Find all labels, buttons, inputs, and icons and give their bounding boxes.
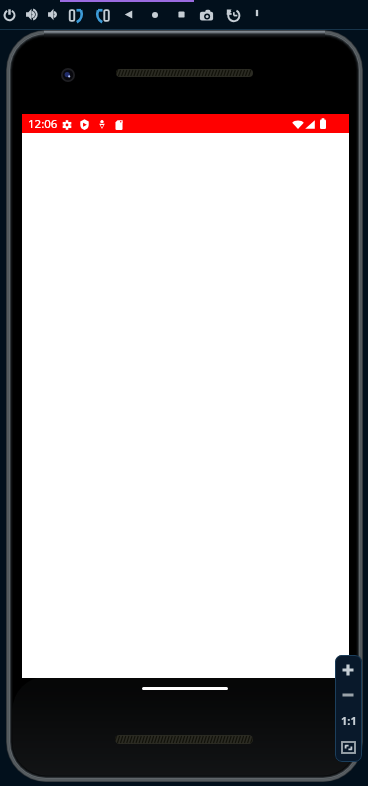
button[interactable]: Back — [124, 10, 133, 19]
button[interactable]: 1:1 — [340, 713, 358, 727]
button[interactable]: More options — [252, 8, 262, 18]
button[interactable]: Home — [152, 12, 158, 18]
button[interactable]: Rotate right — [95, 8, 110, 23]
staticText: 1:1 — [341, 713, 357, 727]
button[interactable]: Zoom out — [342, 689, 354, 701]
button[interactable]: Fit to screen — [341, 741, 356, 754]
button[interactable]: Volume down — [47, 8, 60, 21]
button[interactable]: Restore — [226, 8, 240, 22]
staticText: 12:06 — [28, 116, 58, 132]
button[interactable]: Overview — [178, 11, 185, 18]
button[interactable]: Zoom in — [342, 664, 354, 676]
button[interactable]: Screenshot — [199, 8, 214, 23]
button[interactable]: Rotate left — [69, 8, 84, 23]
button[interactable]: Volume up — [25, 8, 38, 21]
button[interactable]: Power — [3, 8, 16, 21]
